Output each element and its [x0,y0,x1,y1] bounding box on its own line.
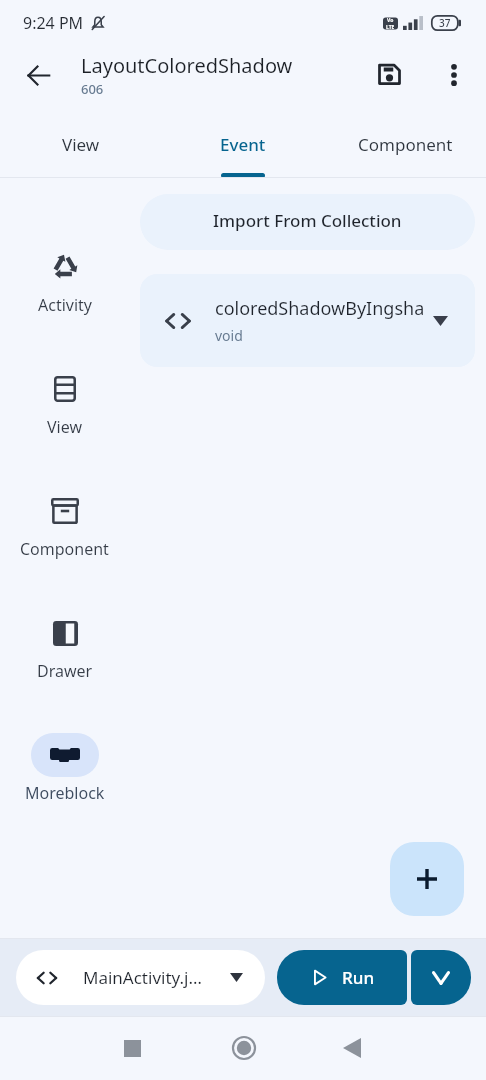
button[interactable]: Moreblock [25,733,105,804]
staticText: Component [358,133,453,156]
button[interactable]: MainActivity.j… [16,950,265,1005]
button[interactable]: View [31,367,99,438]
staticText: View [47,416,83,438]
button[interactable]: Add [390,842,464,916]
staticText: Event [220,133,266,156]
button[interactable]: Event [162,111,324,178]
staticText: void [215,326,243,345]
button[interactable]: Home [216,1020,272,1076]
button[interactable]: Drawer [31,611,99,682]
staticText: 37 [439,16,451,30]
staticText: Run [342,966,375,989]
staticText: 9:24 PM [23,12,84,34]
button[interactable]: Component [20,489,109,560]
button[interactable]: Recents [104,1020,160,1076]
staticText: LTE [386,24,395,31]
staticText: Moreblock [25,782,105,804]
button[interactable]: Save [367,52,411,96]
button[interactable]: coloredShadowByIngsha [140,274,475,367]
button[interactable]: Activity [31,245,99,316]
button[interactable]: More options [434,55,474,95]
button[interactable]: View [0,111,162,178]
button[interactable]: Back [16,53,60,97]
staticText: MainActivity.j… [83,966,230,989]
button[interactable]: Back [324,1020,380,1076]
staticText: Activity [38,294,93,316]
button[interactable]: Run [277,950,407,1005]
staticText: View [62,133,100,156]
staticText: coloredShadowByIngsha [215,296,425,321]
button[interactable]: Import From Collection [140,194,475,250]
staticText: Import From Collection [213,209,402,232]
staticText: 606 [81,80,104,98]
staticText: Component [20,538,109,560]
button[interactable]: Run options [411,950,471,1005]
staticText: Drawer [37,660,93,682]
button[interactable]: Component [324,111,486,178]
staticText: LayoutColoredShadow [81,52,293,79]
staticText: Vo [387,17,394,24]
